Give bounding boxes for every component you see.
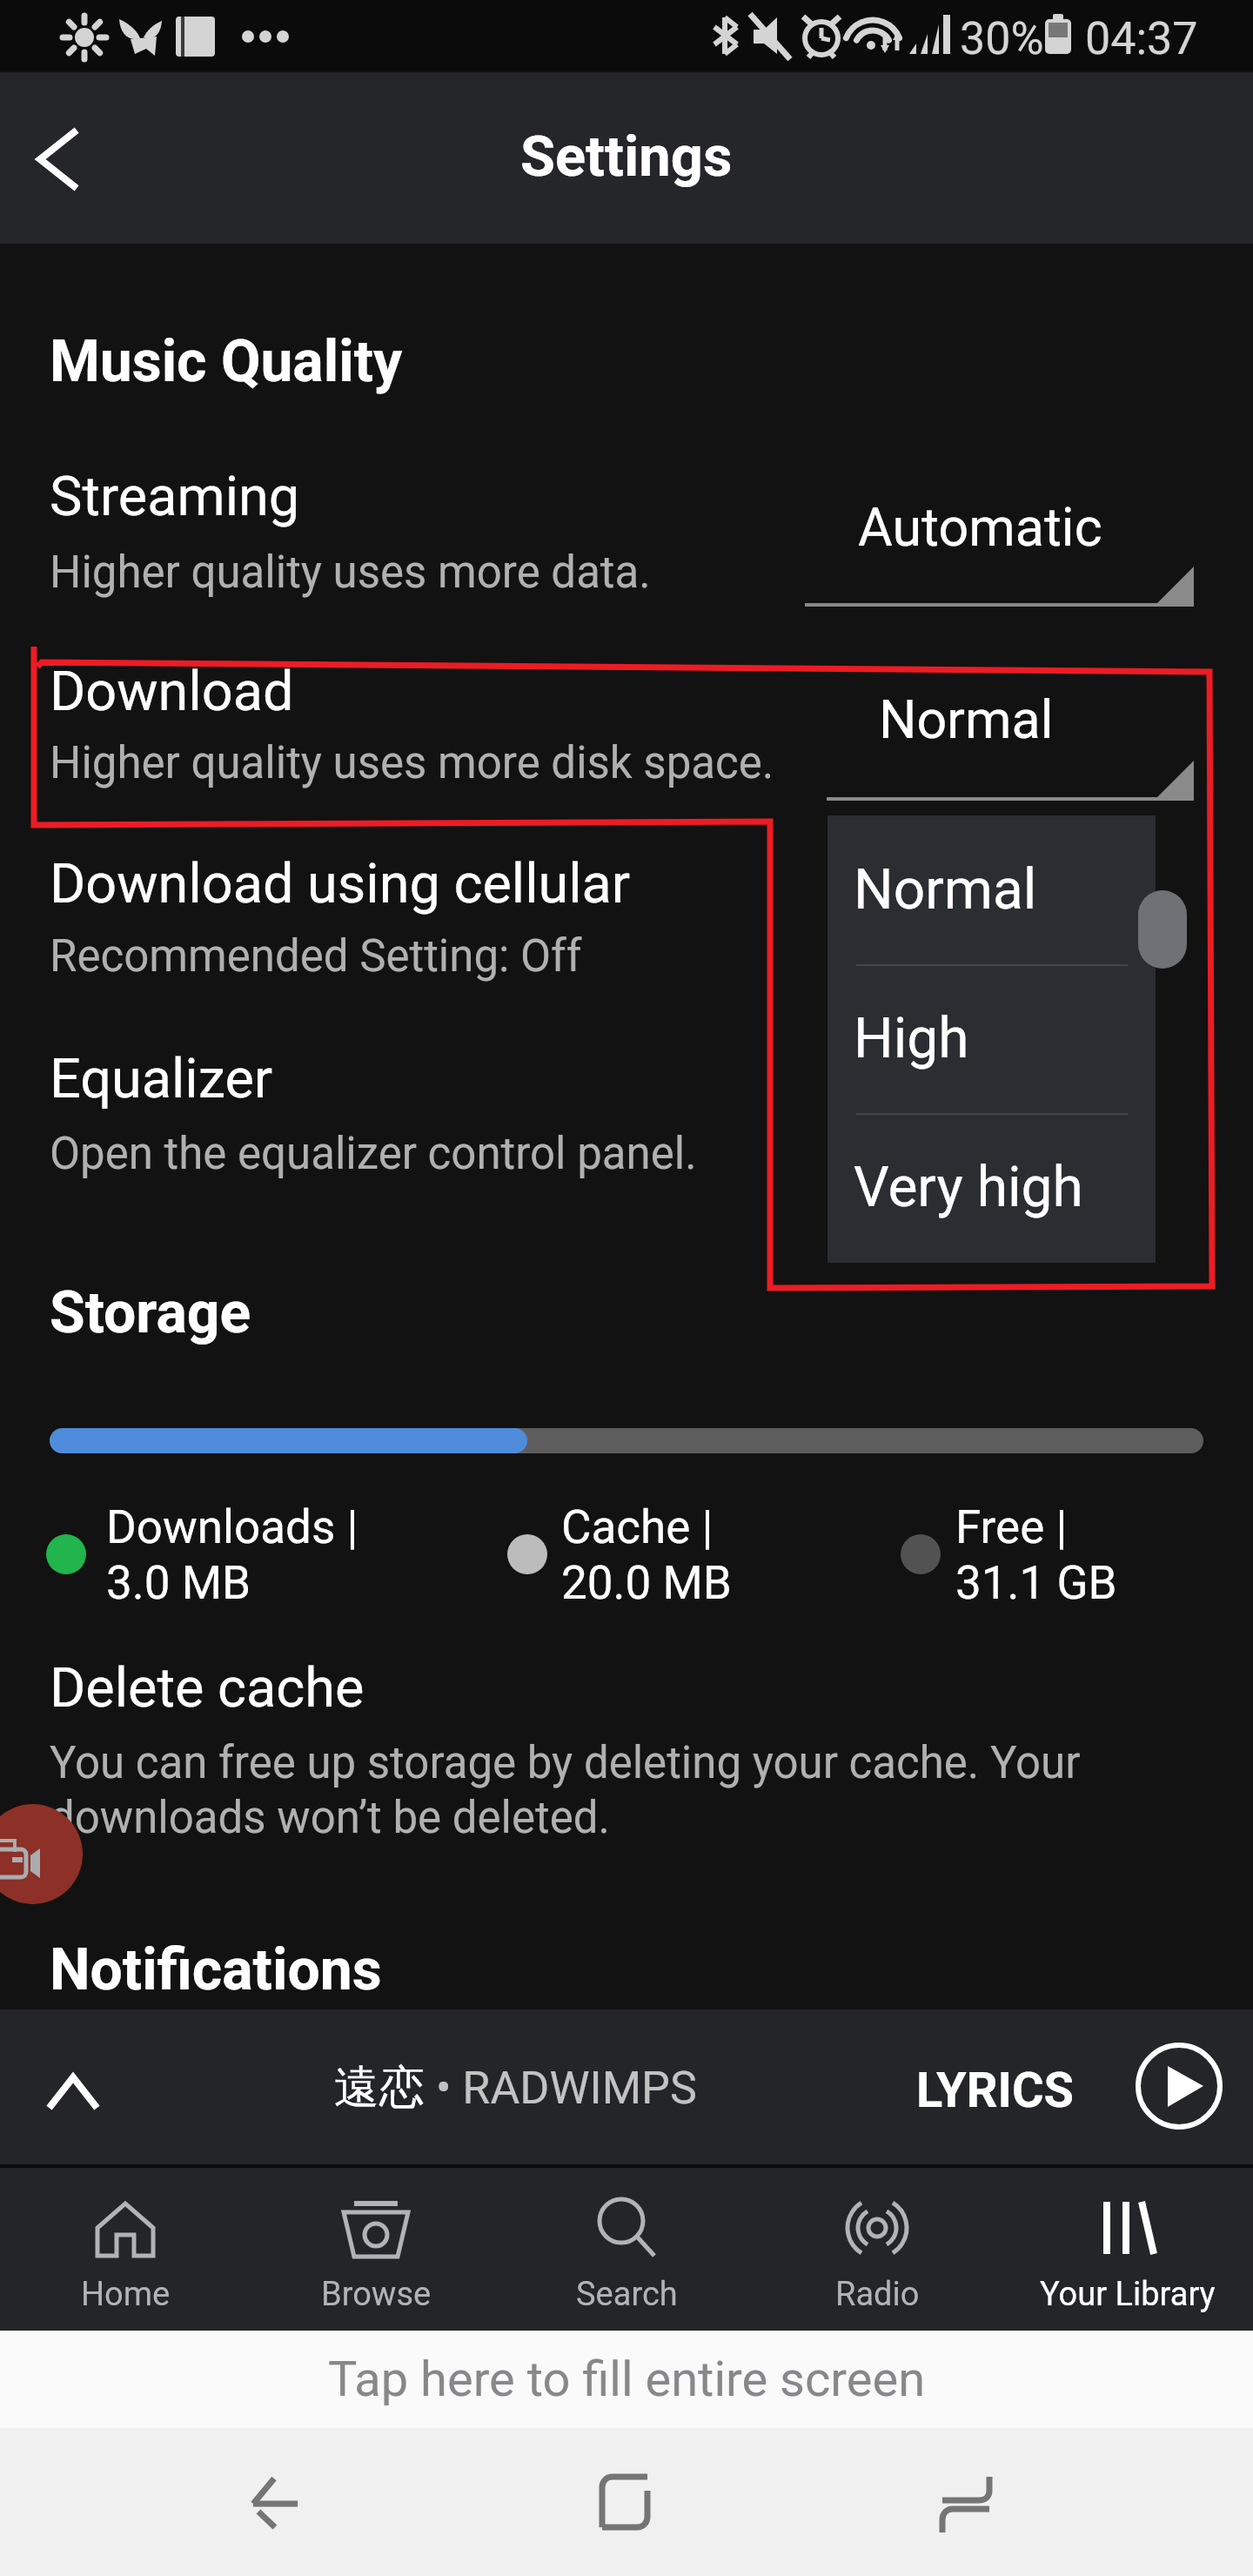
staticText: Download using cellular [50, 852, 631, 916]
staticText: Your Library [1040, 2275, 1216, 2314]
staticText: Radio [835, 2275, 920, 2314]
staticText: Browse [321, 2275, 432, 2314]
button[interactable] [0, 1654, 1253, 1871]
button[interactable]: Radio [752, 2169, 1002, 2329]
staticText: 04:37 [1085, 12, 1198, 65]
staticText: Higher quality uses more disk space. [50, 737, 774, 789]
button[interactable]: Play [1136, 2044, 1223, 2131]
staticText: Higher quality uses more data. [50, 547, 651, 599]
staticText: downloads won’t be deleted. [50, 1792, 610, 1844]
button[interactable]: Screen recorder [0, 1804, 83, 1904]
button[interactable]: High [828, 964, 1156, 1113]
staticText: 3.0 MB [106, 1556, 251, 1610]
button[interactable] [0, 453, 1253, 618]
staticText: Very high [854, 1155, 1083, 1220]
staticText: 30% [960, 12, 1044, 65]
staticText: Notifications [50, 1936, 382, 2003]
staticText: Home [81, 2275, 171, 2314]
button[interactable]: Search [501, 2169, 752, 2329]
staticText: High [854, 1006, 969, 1071]
button[interactable] [827, 662, 1194, 813]
staticText: LYRICS [916, 2062, 1075, 2119]
staticText: Downloads | [106, 1500, 358, 1554]
button[interactable]: Home [546, 2428, 702, 2576]
button[interactable]: Back [0, 71, 131, 242]
staticText: Streaming [50, 465, 300, 529]
button[interactable]: Normal [828, 815, 1156, 964]
staticText: 遠恋 [334, 2059, 425, 2116]
button[interactable]: Very high [828, 1113, 1156, 1262]
staticText: • RADWIMPS [425, 2062, 697, 2115]
button[interactable] [805, 470, 1194, 619]
staticText: 20.0 MB [561, 1556, 732, 1610]
staticText: Open the equalizer control panel. [50, 1128, 697, 1180]
button[interactable]: Recent apps [896, 2428, 1053, 2576]
staticText: Free | [955, 1500, 1068, 1554]
staticText: Delete cache [50, 1656, 365, 1721]
staticText: Download [50, 660, 294, 724]
staticText: Normal [854, 857, 1037, 922]
button[interactable]: Browse [251, 2169, 501, 2329]
staticText: You can free up storage by deleting your… [50, 1737, 1081, 1789]
button[interactable] [0, 840, 1253, 1001]
button[interactable]: Home [0, 2169, 251, 2329]
button[interactable]: Back [196, 2428, 352, 2576]
staticText: Automatic [858, 496, 1102, 558]
staticText: Storage [50, 1279, 251, 1346]
button[interactable]: Expand player [17, 2027, 131, 2149]
button[interactable]: Your Library [1002, 2169, 1253, 2329]
staticText: Normal [879, 688, 1054, 750]
button[interactable] [0, 648, 1253, 809]
button[interactable]: Tap here to fill entire screen [0, 2331, 1253, 2428]
staticText: Tap here to fill entire screen [328, 2351, 926, 2408]
staticText: Settings [520, 124, 733, 190]
button[interactable]: LYRICS [916, 2062, 1075, 2119]
button[interactable] [0, 1036, 1253, 1197]
staticText: Equalizer [50, 1047, 273, 1111]
staticText: 31.1 GB [955, 1556, 1117, 1610]
staticText: Cache | [561, 1500, 714, 1554]
staticText: Music Quality [50, 328, 403, 395]
staticText: Search [576, 2275, 678, 2314]
staticText: Recommended Setting: Off [50, 930, 582, 983]
